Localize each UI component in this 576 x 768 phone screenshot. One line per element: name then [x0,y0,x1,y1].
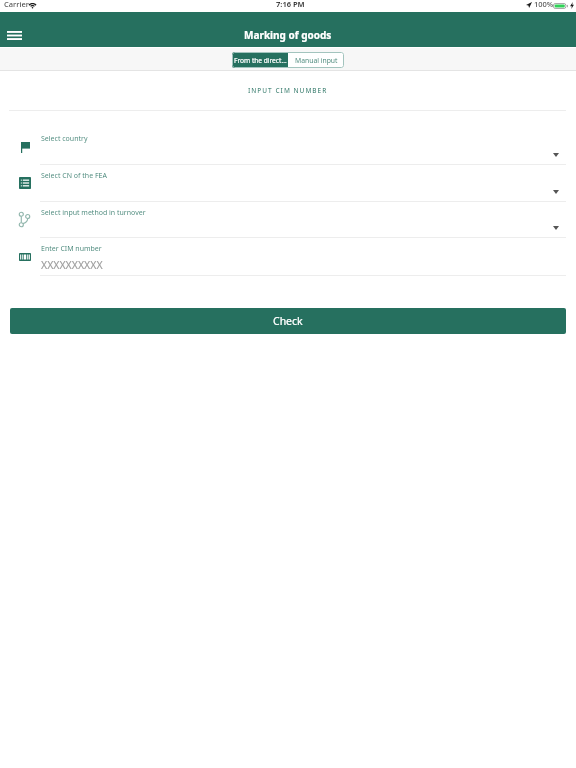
staticText: 7:16 PM [276,0,305,9]
button[interactable]: Manual input [288,52,344,68]
staticText: Enter CIM number [41,244,102,254]
staticText: INPUT CIM NUMBER [248,86,328,95]
button[interactable]: Check [10,308,566,334]
staticText: Select CN of the FEA [41,171,107,181]
button[interactable]: From the direct… [232,52,288,68]
staticText: Select input method in turnover [41,208,146,218]
staticText: Check [273,314,303,328]
staticText: Manual input [295,56,338,65]
staticText: 100% [534,0,554,9]
staticText: Carrier [4,0,29,9]
button[interactable]: Enter CIM number [0,238,576,275]
staticText: Marking of goods [244,28,332,42]
staticText: From the direct… [234,56,287,65]
button[interactable]: Menu [0,23,28,47]
button[interactable]: Select country [0,128,576,164]
staticText: XXXXXXXXXX [41,258,103,272]
button[interactable]: Select input method in turnover [0,202,576,237]
staticText: Select country [41,134,88,144]
button[interactable]: Select CN of the FEA [0,165,576,201]
